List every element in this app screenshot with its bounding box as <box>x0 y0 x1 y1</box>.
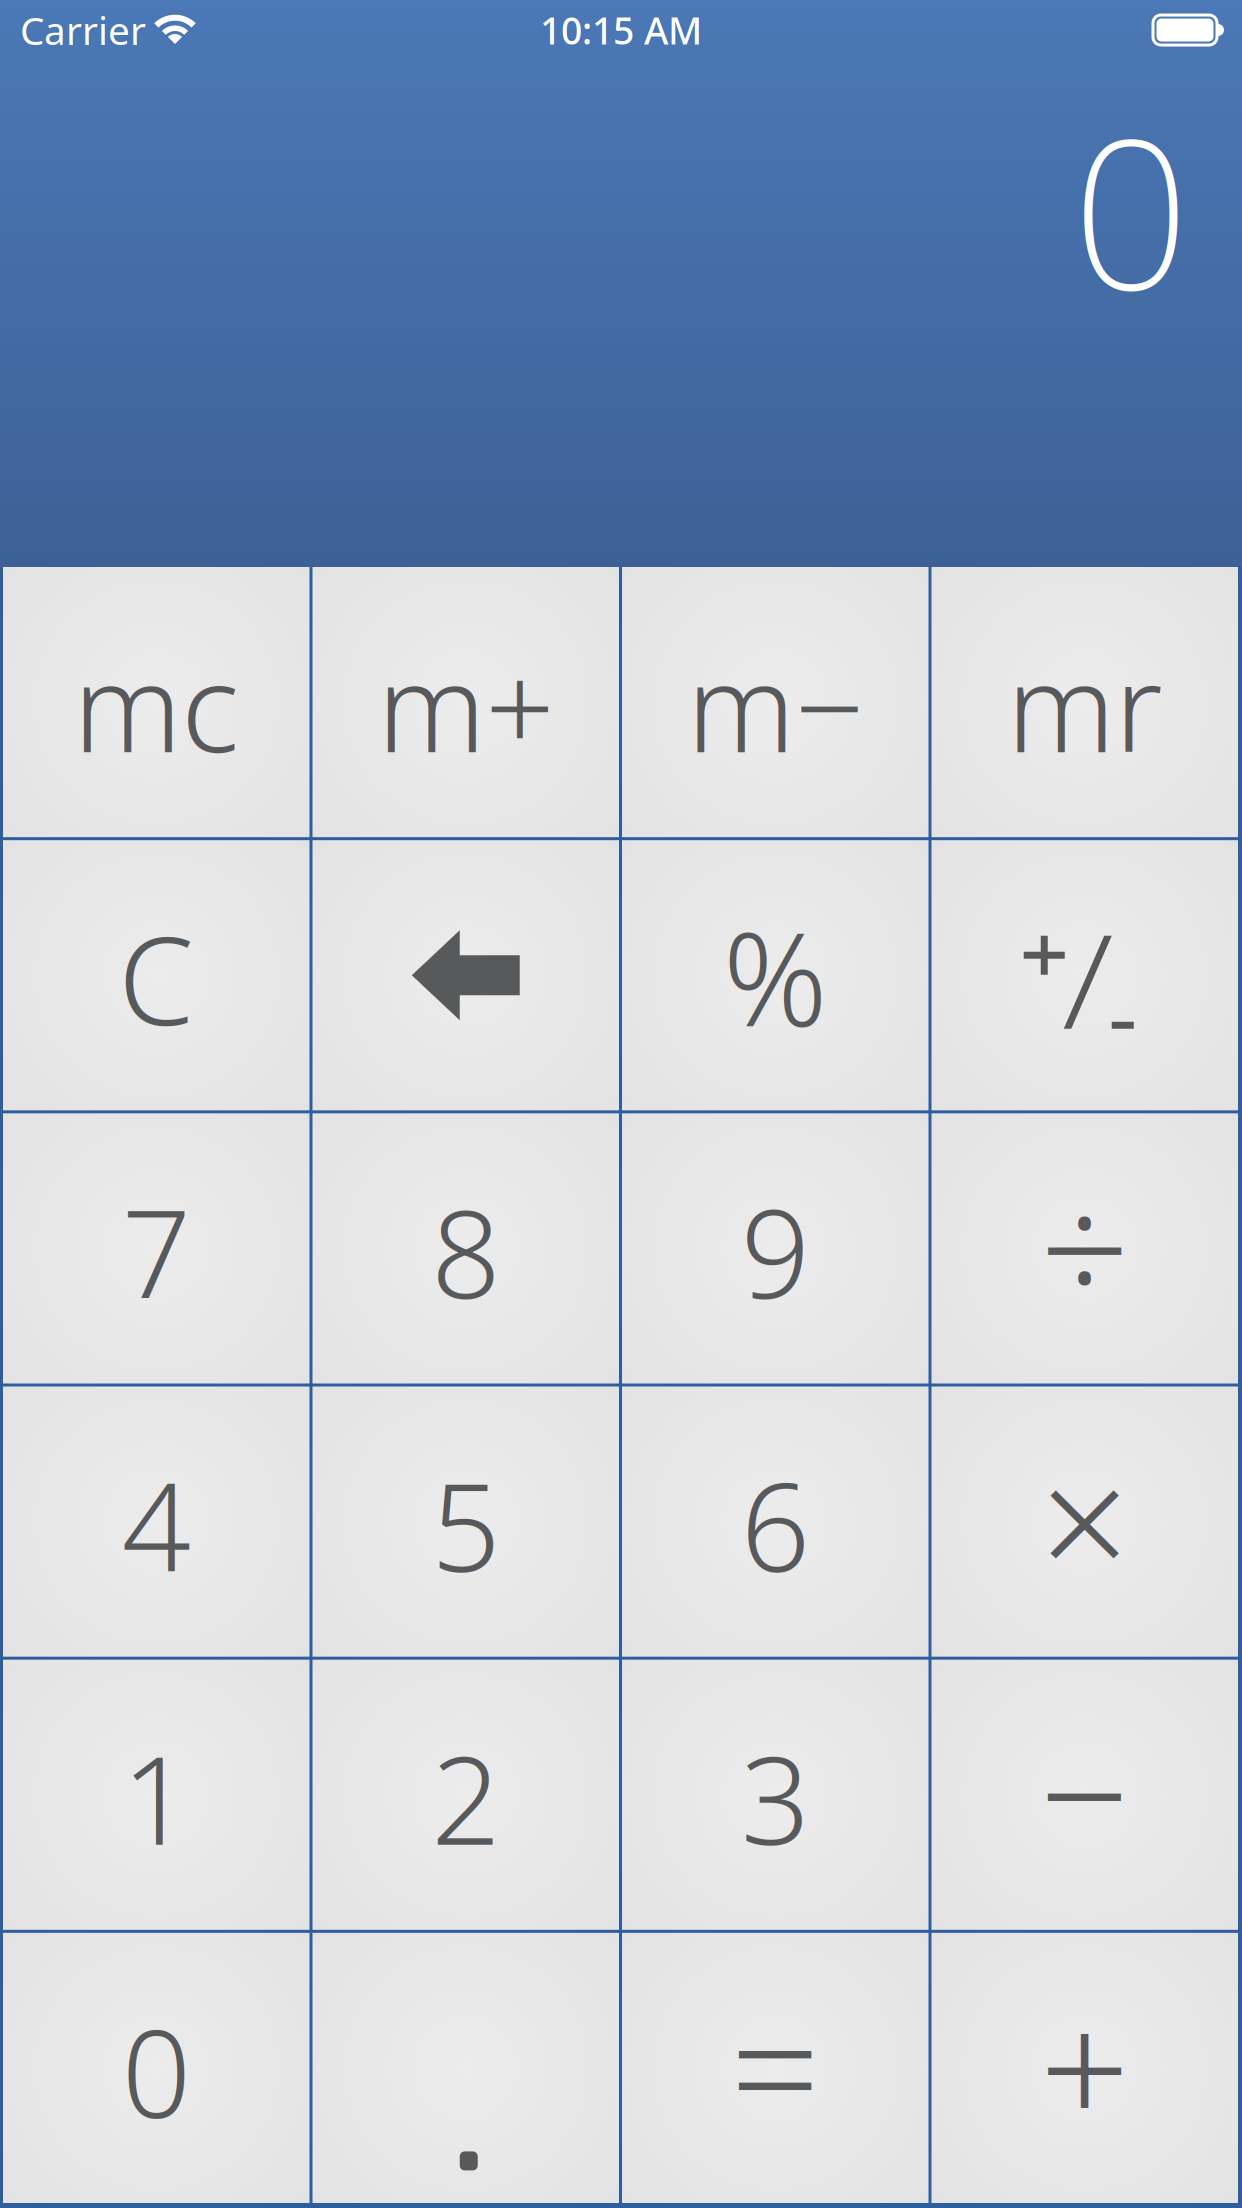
button[interactable]: Backspace <box>312 840 619 1110</box>
button[interactable]: 5 <box>312 1386 619 1657</box>
staticText: Carrier <box>20 4 146 56</box>
staticText: − <box>1040 1687 1130 1896</box>
button[interactable]: + <box>931 1933 1238 2203</box>
button[interactable]: m+ <box>312 567 619 837</box>
button[interactable]: % <box>622 840 928 1110</box>
staticText: 1 <box>122 1717 191 1878</box>
staticText: 9 <box>741 1171 810 1332</box>
button[interactable]: Decimal point <box>312 1933 619 2203</box>
staticText: 5 <box>431 1444 500 1605</box>
button[interactable]: Plus minus <box>931 840 1238 1110</box>
button[interactable]: − <box>931 1660 1238 1930</box>
button[interactable]: × <box>931 1386 1238 1657</box>
staticText: mr <box>1007 624 1163 786</box>
button[interactable]: m− <box>622 567 928 837</box>
staticText: 0 <box>1072 72 1190 346</box>
button[interactable]: 4 <box>3 1386 309 1657</box>
staticText: m+ <box>377 624 554 786</box>
button[interactable]: ÷ <box>931 1113 1238 1383</box>
button[interactable]: 7 <box>3 1113 309 1383</box>
staticText: % <box>723 890 828 1062</box>
staticText: 4 <box>122 1444 191 1605</box>
staticText: 8 <box>431 1171 500 1332</box>
staticText: = <box>730 1960 820 2169</box>
button[interactable]: = <box>622 1933 928 2203</box>
button[interactable]: 3 <box>622 1660 928 1930</box>
button[interactable]: mc <box>3 567 309 837</box>
button[interactable]: 9 <box>622 1113 928 1383</box>
staticText: 7 <box>122 1171 191 1332</box>
staticText: 10:15 AM <box>540 5 702 55</box>
staticText: 6 <box>741 1444 810 1605</box>
staticText: + <box>1040 1960 1130 2169</box>
staticText: 0 <box>122 1990 191 2151</box>
staticText: ÷ <box>1040 1141 1130 1350</box>
button[interactable]: 2 <box>312 1660 619 1930</box>
staticText: m− <box>687 624 864 786</box>
button[interactable]: 8 <box>312 1113 619 1383</box>
staticText: C <box>118 898 194 1059</box>
button[interactable]: 0 <box>3 1933 309 2203</box>
button[interactable]: mr <box>931 567 1238 837</box>
button[interactable]: C <box>3 840 309 1110</box>
staticText: mc <box>73 624 239 786</box>
staticText: × <box>1040 1414 1130 1623</box>
button[interactable]: 6 <box>622 1386 928 1657</box>
staticText: 2 <box>431 1717 500 1878</box>
staticText: 3 <box>741 1717 810 1878</box>
button[interactable]: 1 <box>3 1660 309 1930</box>
